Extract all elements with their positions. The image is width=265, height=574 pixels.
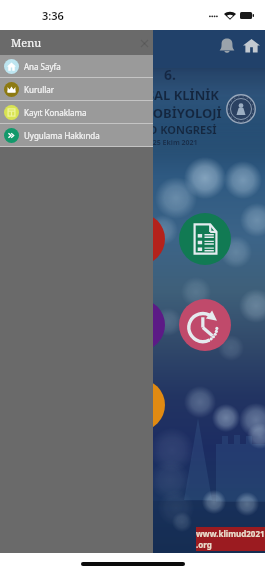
button[interactable]: Ana Sayfa <box>0 55 153 78</box>
staticText: Kayıt Konaklama <box>24 107 87 118</box>
staticText: www.klimud2021.org <box>196 528 265 550</box>
staticText: 22-25 Ekim 2021 <box>142 138 198 148</box>
staticText: Ana Sayfa <box>24 61 61 72</box>
staticText: MİKROBİYOLOJİ <box>118 104 222 122</box>
button[interactable]: Konusmacilar <box>113 299 165 351</box>
button[interactable]: Close menu <box>136 35 152 51</box>
button[interactable]: Notifications <box>215 30 239 60</box>
staticText: Kurullar <box>24 84 55 95</box>
button[interactable]: Gecmis <box>179 299 231 351</box>
button[interactable]: Uygulama Hakkında <box>0 124 153 147</box>
staticText: 3:36 <box>42 8 64 23</box>
button[interactable]: Kayıt Konaklama <box>0 101 153 124</box>
staticText: Menu <box>11 35 42 50</box>
staticText: 6. <box>164 65 176 84</box>
button[interactable]: Kurullar <box>0 78 153 101</box>
button[interactable]: Home <box>239 30 263 60</box>
button[interactable]: Bildiriler <box>113 213 165 265</box>
staticText: Uygulama Hakkında <box>24 130 100 141</box>
staticText: COVID KONGRESİ <box>122 122 217 137</box>
button[interactable]: Sponsorlar <box>113 379 165 431</box>
staticText: ULUSAL KLİNİK <box>120 86 219 104</box>
button[interactable]: Program <box>179 213 231 265</box>
